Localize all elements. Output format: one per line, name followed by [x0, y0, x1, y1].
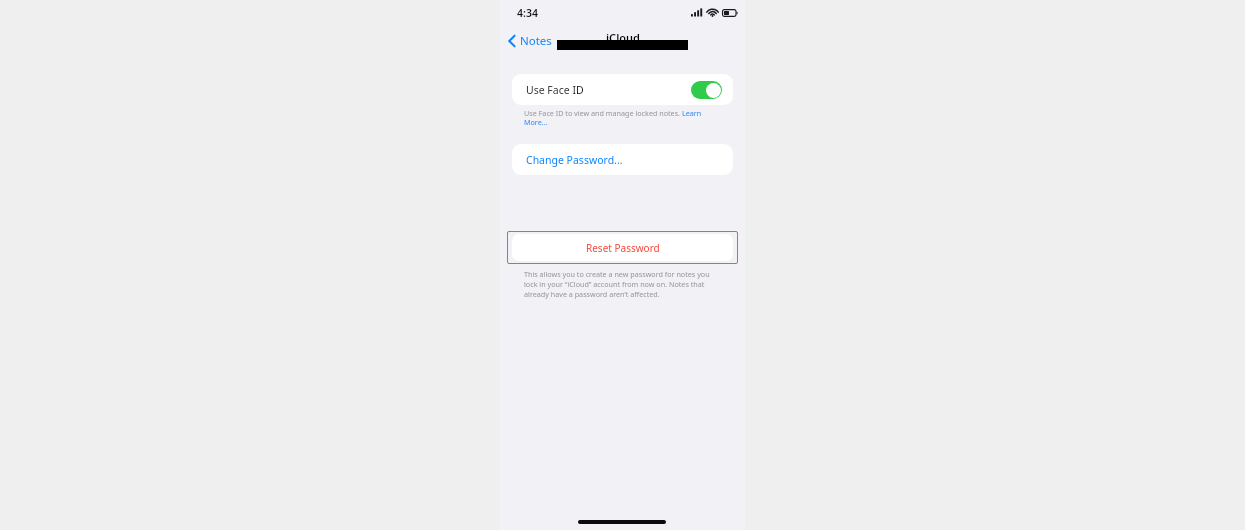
staticText: iCloud — [606, 30, 640, 45]
staticText: Change Password... — [526, 153, 623, 167]
staticText: 4:34 — [517, 6, 538, 20]
button[interactable]: Change Password... — [512, 144, 733, 175]
staticText: This allows you to create a new password… — [524, 269, 724, 299]
button[interactable]: Use Face ID toggle, on — [691, 81, 722, 99]
button[interactable]: Reset Password — [512, 234, 733, 261]
staticText: Use Face ID — [526, 83, 584, 97]
staticText: Use Face ID to view and manage locked no… — [524, 108, 716, 128]
button[interactable]: Notes — [508, 30, 552, 52]
staticText: Reset Password — [586, 241, 660, 255]
button[interactable]: Use Face ID — [512, 74, 733, 105]
staticText: Notes — [520, 33, 552, 49]
